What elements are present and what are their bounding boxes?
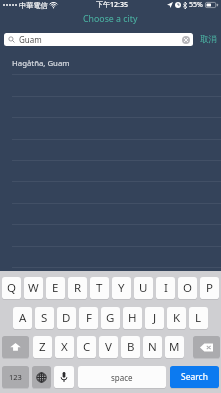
staticText: H [128, 310, 137, 326]
staticText: R [74, 280, 82, 296]
button[interactable]: M [165, 336, 184, 358]
button[interactable]: 123 [2, 366, 29, 388]
staticText: M [169, 339, 180, 355]
staticText: 取消 [200, 34, 217, 45]
button[interactable]: Change keyboard [32, 366, 51, 388]
staticText: B [127, 339, 135, 355]
button[interactable]: R [68, 277, 87, 299]
staticText: Q [7, 280, 16, 296]
staticText: W [28, 280, 39, 296]
button[interactable]: N [143, 336, 162, 358]
button[interactable]: Shift [2, 336, 29, 358]
staticText: K [173, 310, 181, 326]
button[interactable]: F [79, 307, 98, 329]
staticText: Search [181, 371, 208, 383]
staticText: O [183, 280, 192, 296]
staticText: G [106, 310, 115, 326]
button[interactable]: Hagåtña, Guam [0, 53, 221, 74]
staticText: F [86, 310, 92, 326]
button[interactable]: I [156, 277, 175, 299]
staticText: 123 [9, 372, 22, 382]
staticText: 55% [189, 0, 203, 10]
button[interactable]: A [13, 307, 32, 329]
button[interactable]: X [55, 336, 74, 358]
button[interactable]: C [77, 336, 96, 358]
button[interactable]: space [78, 366, 166, 388]
button[interactable]: Voice input [54, 366, 74, 388]
button[interactable]: B [121, 336, 140, 358]
button[interactable]: L [189, 307, 208, 329]
button[interactable]: J [145, 307, 164, 329]
button[interactable]: Guam [4, 33, 193, 46]
staticText: U [139, 280, 148, 296]
staticText: space [111, 372, 133, 383]
staticText: L [195, 310, 202, 326]
button[interactable]: 取消 [200, 30, 217, 48]
button[interactable]: S [35, 307, 54, 329]
staticText: Choose a city [83, 13, 138, 25]
button[interactable]: Q [2, 277, 21, 299]
button[interactable]: Backspace [193, 336, 220, 358]
button[interactable]: Search [170, 366, 219, 388]
button[interactable]: K [167, 307, 186, 329]
button[interactable]: G [101, 307, 120, 329]
staticText: Guam [19, 34, 42, 45]
button[interactable]: O [178, 277, 197, 299]
staticText: V [105, 339, 112, 355]
staticText: T [96, 280, 103, 296]
staticText: Hagåtña, Guam [12, 58, 70, 69]
button[interactable]: H [123, 307, 142, 329]
staticText: J [153, 310, 157, 326]
staticText: Y [118, 280, 125, 296]
button[interactable]: U [134, 277, 153, 299]
staticText: Z [39, 339, 46, 355]
staticText: N [148, 339, 157, 355]
staticText: S [41, 310, 48, 326]
staticText: C [83, 339, 91, 355]
button[interactable]: Clear text [182, 36, 190, 44]
staticText: 下午12:35 [96, 0, 128, 10]
staticText: I [164, 280, 168, 296]
button[interactable]: Y [112, 277, 131, 299]
button[interactable]: E [46, 277, 65, 299]
button[interactable]: Z [33, 336, 52, 358]
button[interactable]: V [99, 336, 118, 358]
staticText: X [61, 339, 68, 355]
button[interactable]: D [57, 307, 76, 329]
button[interactable]: T [90, 277, 109, 299]
button[interactable]: W [24, 277, 43, 299]
staticText: E [52, 280, 59, 296]
staticText: 中華電信 [19, 1, 48, 10]
staticText: A [19, 310, 27, 326]
button[interactable]: P [200, 277, 219, 299]
staticText: P [206, 280, 213, 296]
staticText: D [62, 310, 71, 326]
